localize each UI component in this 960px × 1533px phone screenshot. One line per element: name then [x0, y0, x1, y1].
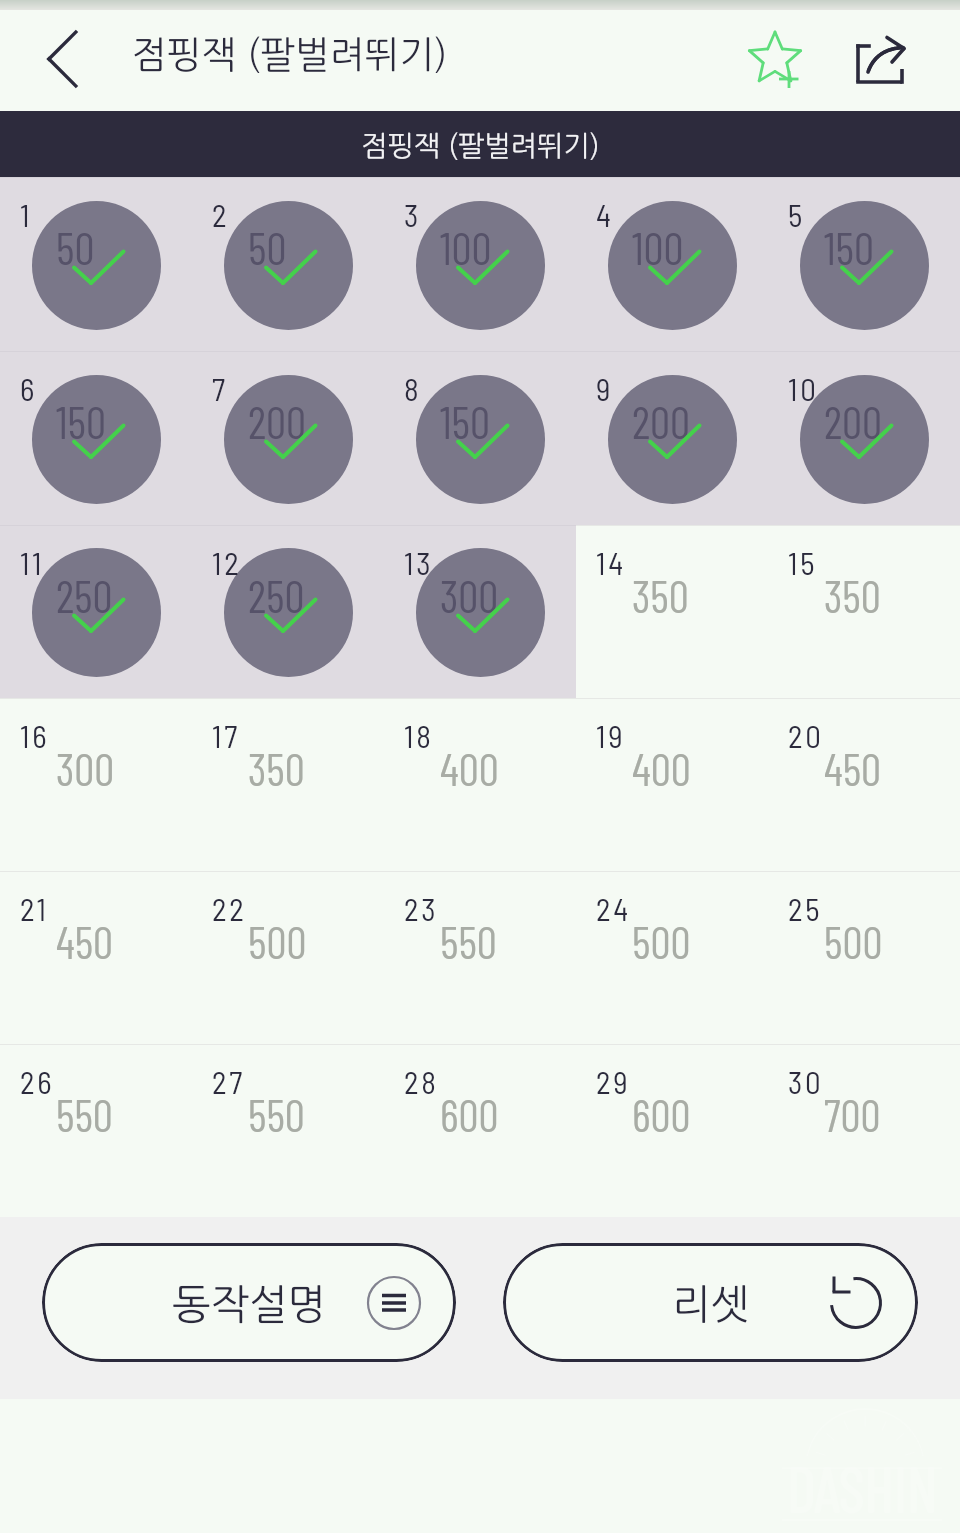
staticText: 550	[56, 1087, 113, 1141]
button[interactable]: 1	[0, 177, 192, 351]
staticText: 7	[212, 370, 228, 407]
button[interactable]: Add to favorites	[752, 10, 856, 111]
button[interactable]: 20	[768, 698, 960, 871]
button[interactable]: 12	[192, 525, 384, 698]
button[interactable]: 22	[192, 871, 384, 1044]
staticText: 450	[824, 741, 882, 795]
staticText: 50	[248, 220, 287, 274]
staticText: 500	[248, 914, 307, 968]
button[interactable]: 3	[384, 177, 576, 351]
button[interactable]: 5	[768, 177, 960, 351]
staticText: 22	[212, 890, 247, 927]
staticText: 리셋	[672, 1284, 750, 1325]
staticText: 20	[788, 717, 824, 754]
staticText: 21	[20, 890, 49, 927]
staticText: 23	[404, 890, 439, 927]
button[interactable]: 7	[192, 351, 384, 525]
staticText: 13	[404, 544, 434, 581]
button[interactable]: 2	[192, 177, 384, 351]
staticText: 25	[788, 890, 823, 927]
staticText: 14	[596, 544, 626, 581]
button[interactable]: 6	[0, 351, 192, 525]
staticText: 600	[440, 1087, 499, 1141]
staticText: 200	[632, 394, 691, 448]
button[interactable]: 11	[0, 525, 192, 698]
staticText: 15	[788, 544, 818, 581]
button[interactable]: 26	[0, 1044, 192, 1217]
button[interactable]: 14	[576, 525, 768, 698]
staticText: 9	[596, 370, 614, 407]
button[interactable]: 19	[576, 698, 768, 871]
button[interactable]: 15	[768, 525, 960, 698]
staticText: 3	[404, 196, 422, 233]
staticText: 250	[56, 568, 113, 622]
staticText: 10	[788, 370, 819, 407]
staticText: 6	[20, 370, 38, 407]
button[interactable]: 리셋	[503, 1243, 918, 1362]
staticText: 16	[20, 717, 50, 754]
button[interactable]: 13	[384, 525, 576, 698]
staticText: 28	[404, 1063, 439, 1100]
staticText: 4	[596, 196, 614, 233]
button[interactable]: 30	[768, 1044, 960, 1217]
staticText: 100	[632, 220, 684, 274]
staticText: 500	[824, 914, 883, 968]
button[interactable]: 10	[768, 351, 960, 525]
staticText: 2	[212, 196, 230, 233]
button[interactable]: Back	[0, 10, 118, 111]
staticText: 450	[56, 914, 114, 968]
button[interactable]: 27	[192, 1044, 384, 1217]
button[interactable]: 8	[384, 351, 576, 525]
staticText: 400	[440, 741, 499, 795]
staticText: 점핑잭 (팔벌려뛰기)	[132, 36, 448, 73]
staticText: 1	[20, 196, 33, 233]
button[interactable]: 23	[384, 871, 576, 1044]
button[interactable]: 9	[576, 351, 768, 525]
staticText: 150	[824, 220, 874, 274]
button[interactable]: 29	[576, 1044, 768, 1217]
staticText: 29	[596, 1063, 631, 1100]
button[interactable]: 16	[0, 698, 192, 871]
staticText: 550	[248, 1087, 305, 1141]
staticText: 300	[56, 741, 115, 795]
button[interactable]: 동작설명	[42, 1243, 456, 1362]
staticText: 300	[440, 568, 499, 622]
staticText: 350	[632, 568, 689, 622]
button[interactable]: 24	[576, 871, 768, 1044]
staticText: 50	[56, 220, 95, 274]
staticText: 150	[440, 394, 490, 448]
staticText: 100	[440, 220, 492, 274]
button[interactable]: 18	[384, 698, 576, 871]
staticText: 19	[596, 717, 626, 754]
staticText: 17	[212, 717, 240, 754]
button[interactable]: 17	[192, 698, 384, 871]
staticText: 점핑잭 (팔벌려뛰기)	[361, 132, 600, 160]
staticText: 18	[404, 717, 434, 754]
staticText: 500	[632, 914, 691, 968]
staticText: 200	[248, 394, 307, 448]
staticText: 5	[788, 196, 806, 233]
staticText: 350	[824, 568, 881, 622]
staticText: 24	[596, 890, 632, 927]
staticText: 8	[404, 370, 422, 407]
button[interactable]: 25	[768, 871, 960, 1044]
staticText: 250	[248, 568, 305, 622]
staticText: 150	[56, 394, 106, 448]
button[interactable]: 4	[576, 177, 768, 351]
staticText: 11	[20, 544, 45, 581]
staticText: 700	[824, 1087, 881, 1141]
staticText: 12	[212, 544, 242, 581]
staticText: 200	[824, 394, 883, 448]
button[interactable]: 21	[0, 871, 192, 1044]
staticText: 350	[248, 741, 305, 795]
button[interactable]: Share	[856, 10, 960, 111]
staticText: 27	[212, 1063, 246, 1100]
staticText: 550	[440, 914, 497, 968]
staticText: 26	[20, 1063, 55, 1100]
staticText: 30	[788, 1063, 824, 1100]
button[interactable]: 28	[384, 1044, 576, 1217]
staticText: 동작설명	[172, 1284, 327, 1325]
staticText: 600	[632, 1087, 691, 1141]
staticText: 400	[632, 741, 691, 795]
